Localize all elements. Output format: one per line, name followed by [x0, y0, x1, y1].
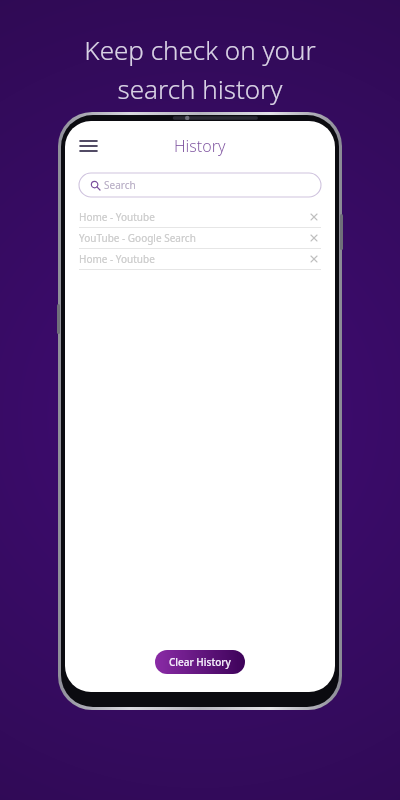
staticText: Home - Youtube — [79, 210, 307, 224]
staticText: YouTube - Google Search — [79, 231, 307, 245]
staticText: Clear History — [169, 655, 231, 669]
button[interactable]: YouTube - Google Search — [79, 228, 321, 249]
button[interactable]: Search — [79, 173, 321, 197]
staticText: Search — [104, 178, 136, 192]
staticText: search history — [117, 71, 283, 106]
button[interactable]: Home - Youtube — [79, 207, 321, 228]
button[interactable]: Remove Home - Youtube from history — [307, 210, 321, 224]
staticText: History — [174, 135, 226, 157]
button[interactable]: Remove Home - Youtube from history — [307, 252, 321, 266]
staticText: Home - Youtube — [79, 252, 307, 266]
button[interactable]: Remove YouTube - Google Search from hist… — [307, 231, 321, 245]
button[interactable]: Open navigation menu — [73, 131, 103, 161]
button[interactable]: Clear History — [155, 650, 245, 674]
button[interactable]: Home - Youtube — [79, 249, 321, 270]
staticText: Keep check on your — [84, 32, 316, 67]
